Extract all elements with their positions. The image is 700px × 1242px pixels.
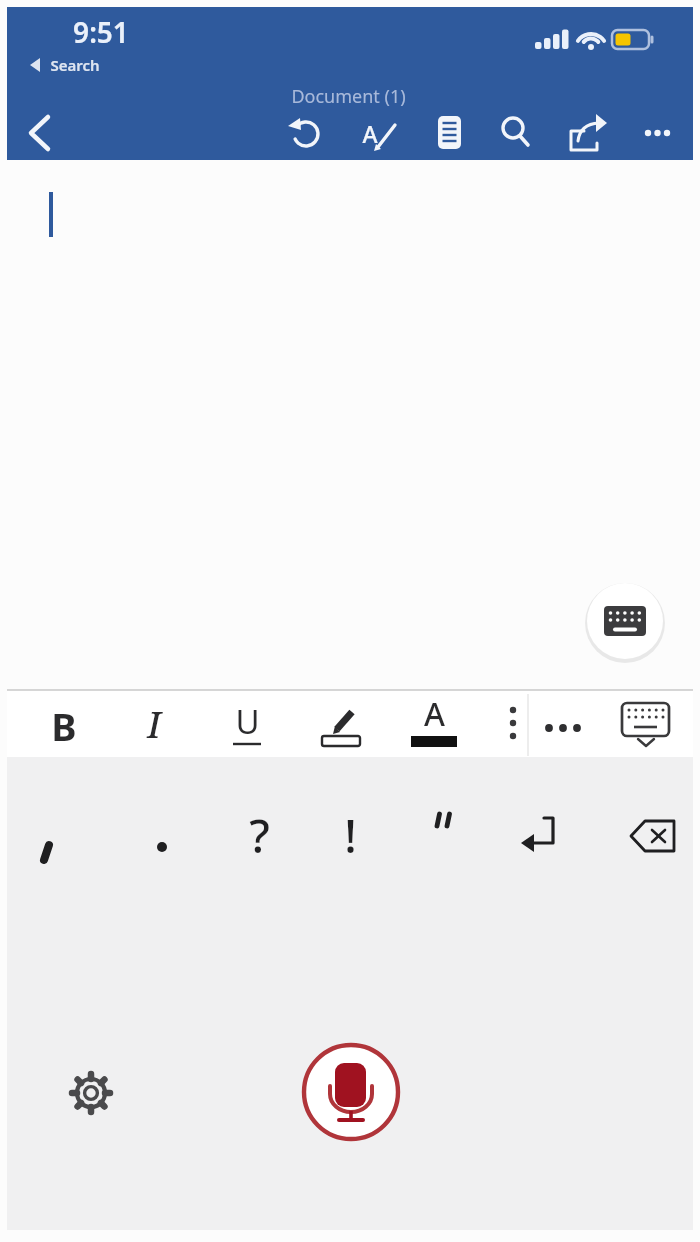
button[interactable] bbox=[20, 112, 64, 156]
button[interactable] bbox=[620, 805, 674, 849]
staticText: B bbox=[51, 700, 77, 752]
staticText: U bbox=[235, 699, 260, 744]
staticText: Search bbox=[50, 55, 100, 75]
button[interactable]: B bbox=[4, 696, 124, 756]
button[interactable]: I bbox=[94, 694, 214, 754]
button[interactable] bbox=[405, 695, 465, 751]
button[interactable] bbox=[587, 583, 663, 659]
staticText: ! bbox=[344, 804, 357, 864]
button[interactable]: ! bbox=[290, 804, 410, 864]
staticText: ? bbox=[249, 804, 270, 864]
staticText: A bbox=[424, 692, 445, 736]
button[interactable] bbox=[26, 52, 136, 76]
button[interactable] bbox=[285, 110, 329, 154]
button[interactable] bbox=[300, 695, 360, 751]
button[interactable]: A bbox=[374, 684, 494, 744]
button[interactable] bbox=[140, 824, 184, 868]
button[interactable] bbox=[636, 110, 680, 154]
button[interactable] bbox=[535, 700, 591, 750]
button[interactable] bbox=[617, 695, 673, 751]
button[interactable] bbox=[420, 800, 464, 844]
button[interactable] bbox=[26, 824, 70, 868]
button[interactable] bbox=[568, 110, 612, 154]
button[interactable]: U bbox=[187, 691, 307, 751]
button[interactable] bbox=[427, 110, 471, 154]
button[interactable]: ? bbox=[199, 804, 319, 864]
staticText: 9:51 bbox=[73, 13, 129, 51]
staticText: I bbox=[147, 700, 161, 749]
button[interactable] bbox=[495, 110, 539, 154]
staticText: Document (1) bbox=[291, 84, 406, 109]
button[interactable] bbox=[303, 1044, 399, 1140]
button[interactable] bbox=[515, 805, 561, 849]
button[interactable] bbox=[63, 1065, 119, 1121]
staticText: A bbox=[362, 118, 378, 149]
button[interactable] bbox=[355, 110, 399, 154]
